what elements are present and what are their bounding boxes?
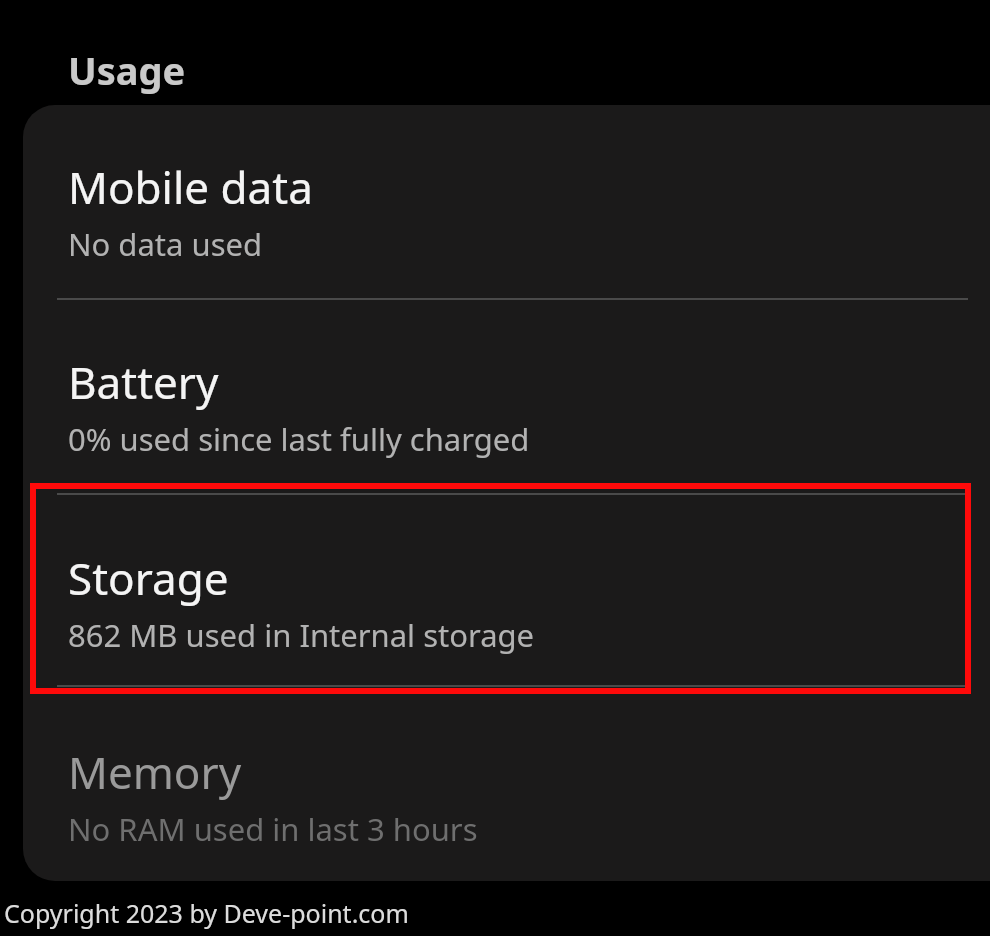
staticText: Copyright 2023 by Deve-point.com [4, 896, 409, 930]
staticText: 0% used since last fully charged [68, 418, 530, 460]
staticText: Storage [68, 548, 229, 608]
staticText: No RAM used in last 3 hours [68, 808, 478, 850]
button[interactable]: Battery [23, 322, 990, 492]
staticText: Usage [68, 44, 186, 96]
button[interactable]: Mobile data [23, 127, 990, 297]
staticText: Memory [68, 742, 242, 802]
staticText: 862 MB used in Internal storage [68, 614, 535, 656]
staticText: No data used [68, 223, 263, 265]
other: Storage setting highlighted [30, 483, 971, 694]
staticText: Mobile data [68, 157, 313, 217]
button[interactable]: Memory [23, 712, 990, 881]
button[interactable]: Storage [23, 518, 990, 688]
staticText: Battery [68, 352, 219, 412]
